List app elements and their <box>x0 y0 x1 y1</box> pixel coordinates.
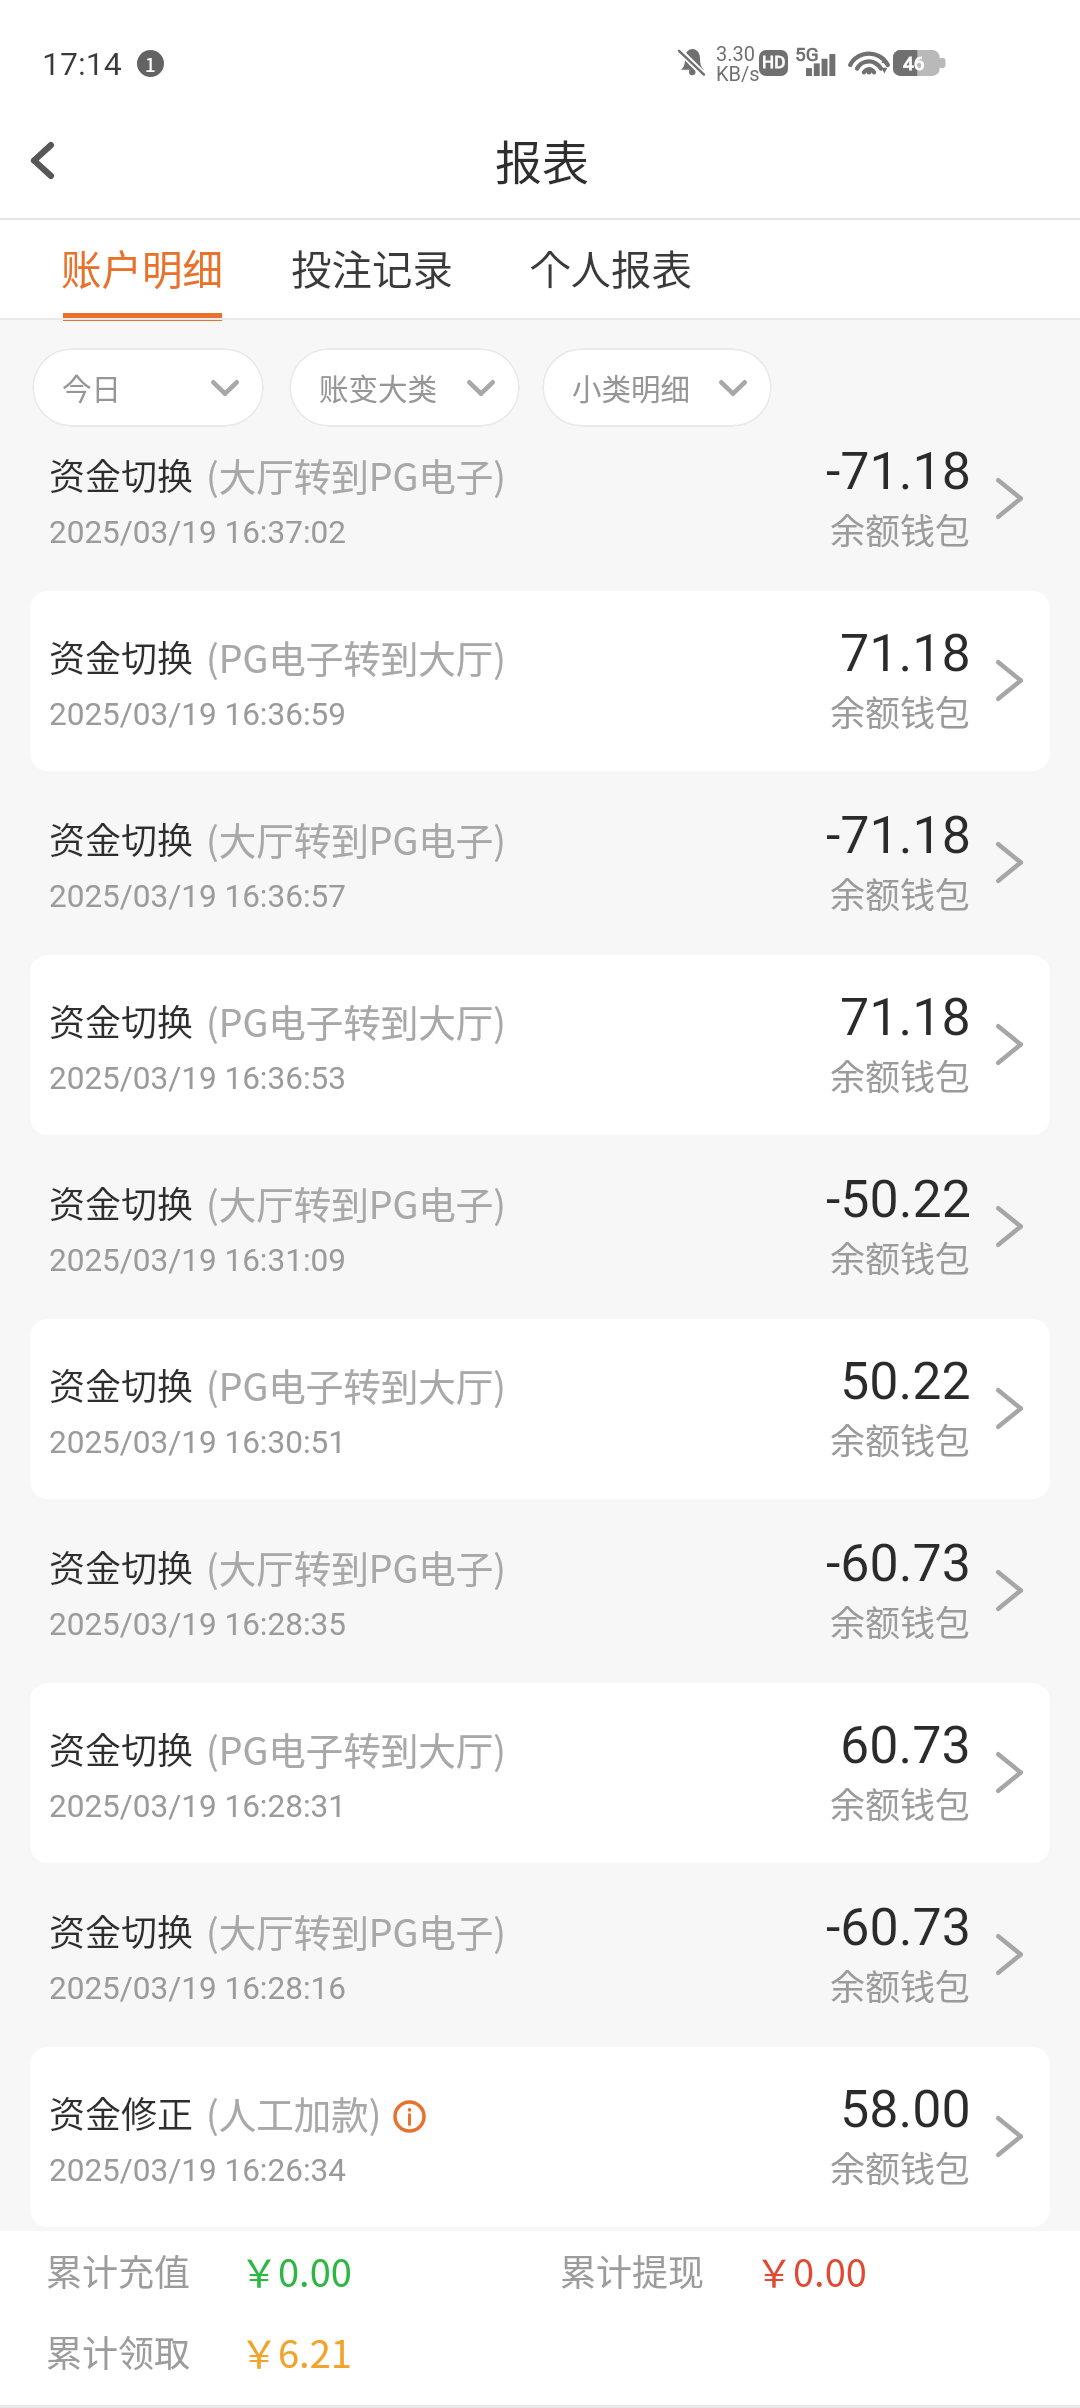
staticText: 累计充值 <box>46 2244 191 2296</box>
button[interactable]: 小类明细 <box>542 348 772 427</box>
staticText: 今日 <box>62 366 122 409</box>
button[interactable]: 资金切换 <box>0 1864 1080 2046</box>
staticText: -71.18 <box>826 441 971 502</box>
staticText: 报表 <box>495 125 589 193</box>
staticText: 资金切换 <box>49 1904 194 1956</box>
staticText: 1 <box>145 50 156 77</box>
staticText: 2025/03/19 16:28:35 <box>49 1606 346 1643</box>
button[interactable]: 个人报表 <box>510 226 712 322</box>
staticText: 资金切换 <box>49 994 194 1046</box>
staticText: 2025/03/19 16:37:02 <box>49 514 346 551</box>
staticText: 资金切换 <box>49 448 194 500</box>
staticText: ￥6.21 <box>240 2324 352 2379</box>
staticText: 17:14 <box>42 45 122 83</box>
staticText: (大厅转到PG电子) <box>206 447 506 501</box>
staticText: 余额钱包 <box>830 1231 971 1282</box>
staticText: (PG电子转到大厅) <box>206 629 506 683</box>
staticText: 余额钱包 <box>830 1595 971 1646</box>
staticText: 2025/03/19 16:28:16 <box>49 1970 346 2007</box>
staticText: 小类明细 <box>572 366 691 409</box>
button[interactable]: 账变大类 <box>289 348 520 427</box>
staticText: 余额钱包 <box>830 1959 971 2010</box>
staticText: 账户明细 <box>61 238 223 297</box>
staticText: 余额钱包 <box>830 685 971 736</box>
staticText: 个人报表 <box>530 238 692 297</box>
button[interactable]: 资金切换 <box>0 1318 1080 1500</box>
staticText: (PG电子转到大厅) <box>206 1721 506 1775</box>
button[interactable]: 资金切换 <box>0 1682 1080 1864</box>
staticText: 5G <box>795 43 819 65</box>
staticText: KB/s <box>716 62 760 85</box>
staticText: (大厅转到PG电子) <box>206 1903 506 1957</box>
button[interactable]: 资金切换 <box>0 772 1080 954</box>
staticText: 累计提现 <box>560 2244 705 2296</box>
staticText: 58.00 <box>840 2079 971 2140</box>
staticText: 3.30 <box>716 42 755 65</box>
staticText: 60.73 <box>840 1715 971 1776</box>
staticText: ￥0.00 <box>240 2243 352 2298</box>
staticText: (大厅转到PG电子) <box>206 811 506 865</box>
button[interactable]: 资金切换 <box>0 1136 1080 1318</box>
button[interactable]: 资金切换 <box>0 408 1080 590</box>
staticText: 2025/03/19 16:28:31 <box>49 1788 346 1825</box>
staticText: 资金切换 <box>49 1540 194 1592</box>
staticText: 2025/03/19 16:31:09 <box>49 1242 346 1279</box>
button[interactable]: 今日 <box>32 348 264 427</box>
staticText: 2025/03/19 16:30:51 <box>49 1424 346 1461</box>
staticText: 账变大类 <box>319 366 438 409</box>
staticText: (PG电子转到大厅) <box>206 1357 506 1411</box>
staticText: 2025/03/19 16:36:59 <box>49 696 346 733</box>
button[interactable]: 投注记录 <box>271 226 473 322</box>
staticText: -50.22 <box>826 1169 971 1230</box>
staticText: 2025/03/19 16:36:53 <box>49 1060 346 1097</box>
staticText: 投注记录 <box>291 238 453 297</box>
staticText: 资金切换 <box>49 1176 194 1228</box>
staticText: 资金切换 <box>49 812 194 864</box>
staticText: 46 <box>903 52 925 74</box>
button[interactable]: 资金切换 <box>0 590 1080 772</box>
staticText: (PG电子转到大厅) <box>206 993 506 1047</box>
button[interactable]: 资金修正 <box>0 2046 1080 2228</box>
staticText: 资金切换 <box>49 1722 194 1774</box>
staticText: 余额钱包 <box>830 867 971 918</box>
staticText: 2025/03/19 16:36:57 <box>49 878 346 915</box>
button[interactable]: 账户明细 <box>41 226 243 322</box>
staticText: (大厅转到PG电子) <box>206 1175 506 1229</box>
staticText: 余额钱包 <box>830 1413 971 1464</box>
button[interactable]: 资金切换 <box>0 1500 1080 1682</box>
staticText: 2025/03/19 16:26:34 <box>49 2152 346 2189</box>
staticText: 余额钱包 <box>830 1777 971 1828</box>
staticText: -60.73 <box>826 1533 971 1594</box>
staticText: ￥0.00 <box>755 2243 867 2298</box>
button[interactable]: 资金切换 <box>0 954 1080 1136</box>
staticText: -71.18 <box>826 805 971 866</box>
staticText: 余额钱包 <box>830 2141 971 2192</box>
staticText: 累计领取 <box>46 2325 191 2377</box>
staticText: HD <box>762 52 786 72</box>
button[interactable]: Back <box>0 112 90 208</box>
staticText: 资金切换 <box>49 1358 194 1410</box>
staticText: (人工加款) <box>206 2085 382 2139</box>
staticText: 余额钱包 <box>830 503 971 554</box>
staticText: 50.22 <box>840 1351 971 1412</box>
staticText: 余额钱包 <box>830 1049 971 1100</box>
staticText: 71.18 <box>840 987 971 1048</box>
staticText: 71.18 <box>840 623 971 684</box>
staticText: 资金切换 <box>49 630 194 682</box>
staticText: 资金修正 <box>49 2086 194 2138</box>
staticText: -60.73 <box>826 1897 971 1958</box>
staticText: (大厅转到PG电子) <box>206 1539 506 1593</box>
